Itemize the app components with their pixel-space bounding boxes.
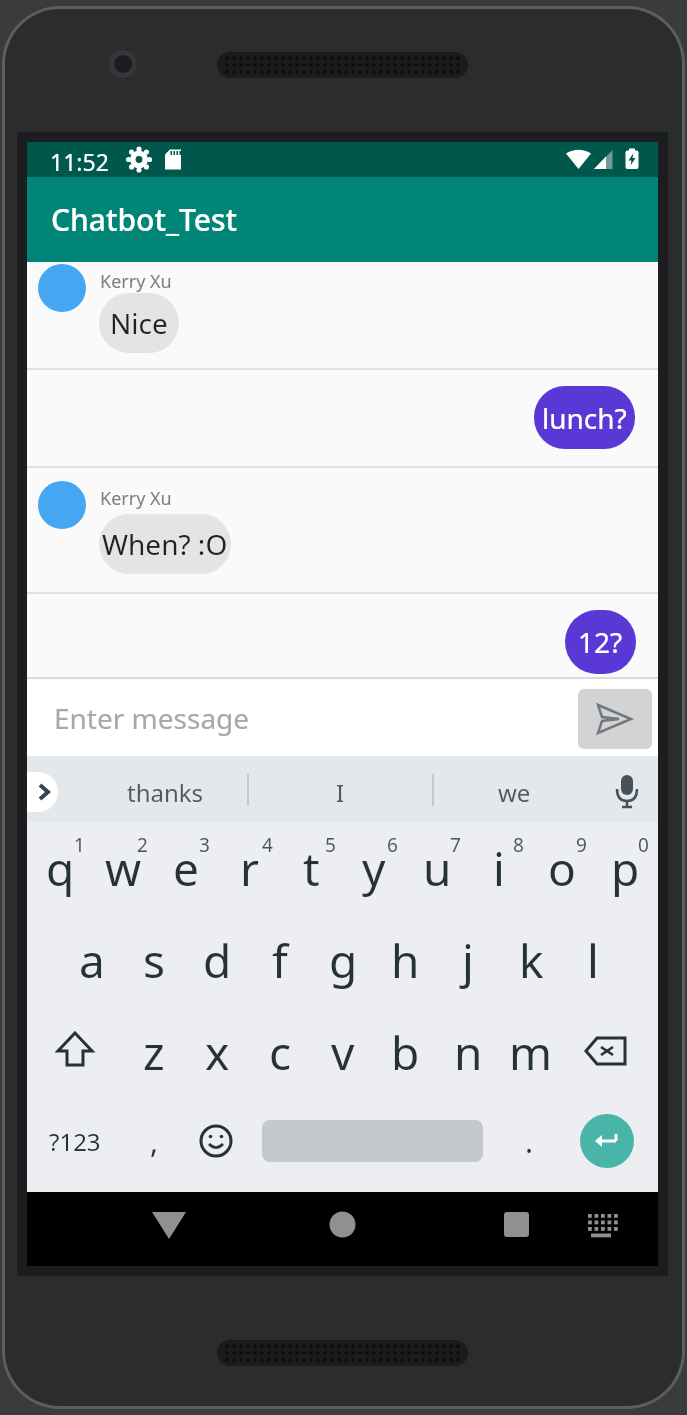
button[interactable] bbox=[580, 1114, 634, 1168]
button[interactable] bbox=[238, 1192, 448, 1266]
staticText: f bbox=[272, 929, 288, 992]
button[interactable]: v bbox=[312, 1006, 374, 1098]
button[interactable] bbox=[27, 772, 58, 812]
staticText: 4 bbox=[262, 832, 273, 858]
staticText: 5 bbox=[325, 832, 336, 858]
button[interactable]: x bbox=[186, 1006, 248, 1098]
staticText: g bbox=[329, 929, 358, 992]
staticText: Kerry Xu bbox=[100, 486, 172, 511]
staticText: u bbox=[423, 837, 452, 900]
button[interactable]: a bbox=[61, 914, 123, 1006]
staticText: m bbox=[509, 1021, 553, 1084]
button[interactable]: . bbox=[489, 1095, 569, 1187]
button[interactable]: t bbox=[280, 822, 342, 914]
staticText: j bbox=[462, 929, 474, 992]
button[interactable]: g bbox=[312, 914, 374, 1006]
button[interactable]: Chatbot_Test bbox=[27, 177, 658, 262]
staticText: 12? bbox=[578, 623, 623, 661]
button[interactable] bbox=[448, 1192, 658, 1266]
button[interactable]: d bbox=[186, 914, 248, 1006]
staticText: b bbox=[391, 1021, 420, 1084]
button[interactable]: b bbox=[374, 1006, 436, 1098]
staticText: w bbox=[105, 837, 142, 900]
button[interactable]: r bbox=[218, 822, 280, 914]
staticText: z bbox=[143, 1021, 165, 1084]
staticText: 3 bbox=[199, 832, 210, 858]
button[interactable]: w bbox=[92, 822, 154, 914]
staticText: h bbox=[391, 929, 420, 992]
staticText: n bbox=[454, 1021, 483, 1084]
button[interactable]: i bbox=[468, 822, 530, 914]
button[interactable] bbox=[578, 689, 652, 749]
button[interactable]: Kerry Xu bbox=[27, 262, 658, 368]
button[interactable]: we bbox=[439, 759, 589, 822]
staticText: 1 bbox=[74, 832, 85, 858]
staticText: ?123 bbox=[49, 1125, 101, 1158]
button[interactable]: z bbox=[123, 1006, 185, 1098]
button[interactable]: l bbox=[562, 914, 624, 1006]
staticText: I bbox=[336, 776, 345, 809]
button[interactable]: f bbox=[249, 914, 311, 1006]
staticText: 6 bbox=[387, 832, 398, 858]
staticText: 11:52 bbox=[50, 146, 109, 177]
staticText: e bbox=[173, 837, 199, 900]
staticText: y bbox=[362, 837, 386, 900]
staticText: Kerry Xu bbox=[100, 269, 172, 294]
staticText: o bbox=[548, 837, 576, 900]
staticText: thanks bbox=[127, 776, 204, 809]
button[interactable]: s bbox=[123, 914, 185, 1006]
button[interactable]: e bbox=[155, 822, 217, 914]
staticText: . bbox=[525, 1121, 534, 1162]
staticText: k bbox=[519, 929, 544, 992]
staticText: 9 bbox=[576, 832, 587, 858]
staticText: d bbox=[203, 929, 232, 992]
button[interactable]: , bbox=[114, 1095, 194, 1187]
staticText: s bbox=[143, 929, 166, 992]
staticText: 8 bbox=[513, 832, 524, 858]
button[interactable]: k bbox=[500, 914, 562, 1006]
button[interactable]: ?123 bbox=[35, 1095, 115, 1187]
staticText: r bbox=[240, 837, 259, 900]
staticText: Chatbot_Test bbox=[51, 199, 237, 240]
staticText: c bbox=[269, 1021, 292, 1084]
button[interactable]: 12? bbox=[27, 594, 658, 677]
button[interactable]: c bbox=[249, 1006, 311, 1098]
button[interactable]: y bbox=[343, 822, 405, 914]
staticText: q bbox=[46, 837, 75, 900]
staticText: , bbox=[150, 1121, 159, 1162]
button[interactable]: q bbox=[29, 822, 91, 914]
button[interactable]: Kerry Xu bbox=[27, 468, 658, 592]
staticText: x bbox=[205, 1021, 230, 1084]
staticText: a bbox=[79, 929, 105, 992]
button[interactable]: Enter message bbox=[27, 679, 567, 756]
button[interactable]: j bbox=[437, 914, 499, 1006]
button[interactable]: p bbox=[594, 822, 656, 914]
button[interactable]: h bbox=[374, 914, 436, 1006]
staticText: i bbox=[493, 837, 505, 900]
staticText: 7 bbox=[450, 832, 461, 858]
button[interactable]: I bbox=[275, 759, 405, 822]
staticText: v bbox=[331, 1021, 355, 1084]
button[interactable]: u bbox=[406, 822, 468, 914]
staticText: Nice bbox=[110, 304, 168, 342]
staticText: l bbox=[587, 929, 599, 992]
button[interactable]: o bbox=[531, 822, 593, 914]
staticText: When? :O bbox=[102, 525, 228, 563]
staticText: t bbox=[303, 837, 320, 900]
button[interactable]: thanks bbox=[58, 759, 273, 822]
button[interactable]: n bbox=[437, 1006, 499, 1098]
staticText: lunch? bbox=[542, 399, 627, 437]
button[interactable]: m bbox=[500, 1006, 562, 1098]
staticText: 0 bbox=[638, 832, 649, 858]
staticText: Enter message bbox=[54, 699, 250, 737]
staticText: we bbox=[498, 776, 531, 809]
button[interactable]: lunch? bbox=[27, 370, 658, 466]
staticText: p bbox=[611, 837, 640, 900]
staticText: 2 bbox=[137, 832, 148, 858]
button[interactable] bbox=[27, 1192, 238, 1266]
